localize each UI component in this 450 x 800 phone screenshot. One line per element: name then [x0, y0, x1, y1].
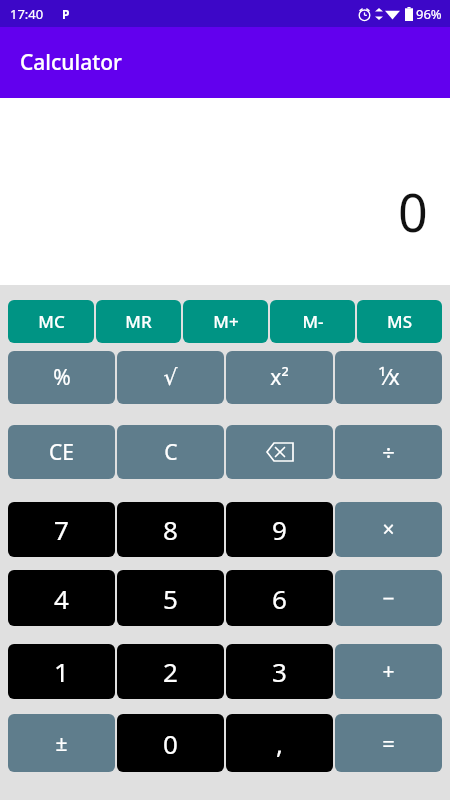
staticText: 96%: [416, 5, 442, 23]
staticText: M+: [213, 310, 239, 333]
button[interactable]: Backspace: [226, 425, 333, 479]
button[interactable]: x²: [226, 351, 333, 404]
staticText: −: [382, 584, 395, 613]
button[interactable]: M+: [183, 300, 268, 343]
staticText: +: [382, 657, 395, 686]
button[interactable]: √: [117, 351, 224, 404]
button[interactable]: +: [335, 644, 442, 699]
staticText: P: [62, 6, 70, 22]
staticText: ¹⁄x: [378, 363, 400, 392]
button[interactable]: 2: [117, 644, 224, 699]
staticText: 4: [54, 581, 69, 616]
button[interactable]: 6: [226, 570, 333, 626]
staticText: MR: [125, 310, 152, 333]
staticText: CE: [49, 438, 74, 467]
staticText: 0: [163, 726, 178, 761]
button[interactable]: M-: [270, 300, 355, 343]
button[interactable]: 1: [8, 644, 115, 699]
staticText: MC: [38, 310, 65, 333]
staticText: 1: [54, 654, 69, 689]
button[interactable]: C: [117, 425, 224, 479]
button[interactable]: 7: [8, 502, 115, 557]
button[interactable]: ,: [226, 714, 333, 772]
button[interactable]: 9: [226, 502, 333, 557]
staticText: 7: [54, 512, 69, 547]
staticText: C: [164, 438, 178, 467]
staticText: M-: [302, 310, 324, 333]
button[interactable]: ¹⁄x: [335, 351, 442, 404]
staticText: =: [382, 728, 395, 758]
staticText: 5: [163, 581, 178, 616]
button[interactable]: 3: [226, 644, 333, 699]
staticText: 2: [163, 654, 178, 689]
button[interactable]: 4: [8, 570, 115, 626]
staticText: 8: [163, 512, 178, 547]
button[interactable]: MC: [8, 300, 94, 343]
staticText: ,: [276, 726, 283, 761]
staticText: √: [163, 365, 178, 391]
button[interactable]: MR: [96, 300, 181, 343]
staticText: x²: [270, 363, 289, 392]
staticText: 9: [272, 512, 287, 547]
button[interactable]: −: [335, 570, 442, 626]
button[interactable]: =: [335, 714, 442, 772]
button[interactable]: MS: [357, 300, 442, 343]
button[interactable]: ÷: [335, 425, 442, 479]
staticText: MS: [387, 310, 412, 333]
button[interactable]: ×: [335, 502, 442, 557]
button[interactable]: 0: [117, 714, 224, 772]
staticText: 3: [272, 654, 287, 689]
button[interactable]: %: [8, 351, 115, 404]
staticText: ×: [382, 515, 395, 544]
staticText: ÷: [382, 437, 395, 467]
button[interactable]: ±: [8, 714, 115, 772]
staticText: %: [53, 363, 71, 392]
button[interactable]: 5: [117, 570, 224, 626]
staticText: 6: [272, 581, 287, 616]
staticText: Calculator: [20, 48, 122, 77]
button[interactable]: CE: [8, 425, 115, 479]
staticText: 17:40: [10, 5, 44, 23]
staticText: ±: [55, 729, 68, 758]
button[interactable]: 8: [117, 502, 224, 557]
staticText: 0: [398, 176, 428, 247]
